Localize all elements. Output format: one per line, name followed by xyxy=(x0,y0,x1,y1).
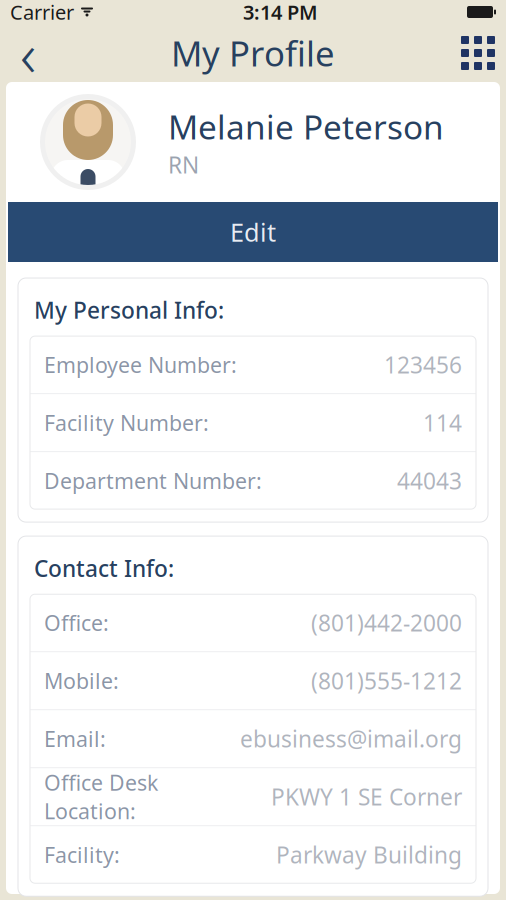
staticText: PKWY 1 SE Corner xyxy=(271,782,462,812)
button[interactable]: Edit xyxy=(8,202,498,262)
staticText: Office Desk Location: xyxy=(44,768,158,825)
staticText: Parkway Building xyxy=(276,840,462,870)
button[interactable]: Back xyxy=(0,24,56,82)
staticText: Email: xyxy=(44,724,106,753)
staticText: 3:14 PM xyxy=(243,0,318,25)
staticText: 114 xyxy=(423,408,462,438)
staticText: Employee Number: xyxy=(44,350,237,379)
staticText: (801)555-1212 xyxy=(311,666,462,696)
staticText: Department Number: xyxy=(44,466,262,495)
staticText: Facility: xyxy=(44,840,120,869)
staticText: 123456 xyxy=(384,350,462,380)
staticText: Facility Number: xyxy=(44,408,209,437)
staticText: My Personal Info: xyxy=(34,295,224,325)
staticText: (801)442-2000 xyxy=(311,608,462,638)
staticText: ‹ xyxy=(20,12,36,94)
staticText: Office: xyxy=(44,608,109,637)
staticText: 44043 xyxy=(397,466,462,496)
button[interactable]: Menu xyxy=(450,24,506,82)
staticText: RN xyxy=(168,150,199,180)
staticText: Carrier xyxy=(10,0,74,25)
staticText: ebusiness@imail.org xyxy=(240,724,462,754)
staticText: Edit xyxy=(230,215,276,249)
staticText: Contact Info: xyxy=(34,553,174,583)
staticText: Mobile: xyxy=(44,666,119,695)
staticText: My Profile xyxy=(171,30,335,76)
staticText: Melanie Peterson xyxy=(168,104,444,149)
